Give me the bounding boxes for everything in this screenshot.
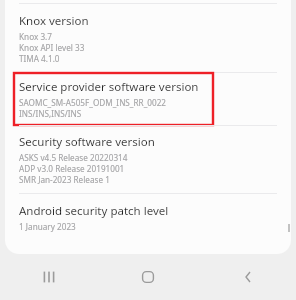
staticText: 1 January 2023 <box>19 221 76 232</box>
staticText: Service provider software version <box>19 79 199 95</box>
button[interactable]: Recent apps <box>0 254 98 300</box>
button[interactable]: Home <box>98 254 197 300</box>
button[interactable]: Security software version <box>14 126 282 193</box>
staticText: SMR Jan-2023 Release 1 <box>19 174 110 185</box>
staticText: SAOMC_SM-A505F_ODM_INS_RR_0022 <box>19 97 167 108</box>
staticText: ASKS v4.5 Release 20220314 <box>19 152 128 163</box>
button[interactable]: Android security patch level <box>14 194 282 241</box>
button[interactable]: Service provider software version <box>14 73 213 125</box>
staticText: Knox API level 33 <box>19 42 85 53</box>
staticText: Android security patch level <box>19 203 169 219</box>
staticText: INS/INS,INS/INS <box>19 108 82 119</box>
button[interactable]: Back <box>197 254 296 300</box>
staticText: TIMA 4.1.0 <box>19 53 60 64</box>
button[interactable]: Knox version <box>14 4 282 72</box>
staticText: Knox version <box>19 13 89 29</box>
staticText: Knox 3.7 <box>19 31 52 42</box>
staticText: Security software version <box>19 134 155 150</box>
staticText: ADP v3.0 Release 20191001 <box>19 163 125 174</box>
